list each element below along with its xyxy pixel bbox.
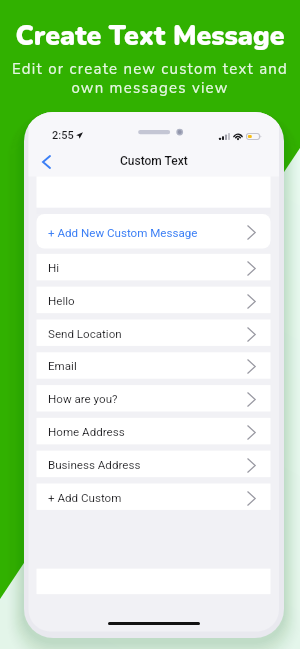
button[interactable]: + Add New Custom Message (37, 214, 271, 249)
button[interactable]: Back (37, 151, 55, 173)
staticText: Email (48, 359, 77, 373)
staticText: 2:55 (52, 129, 74, 142)
staticText: Home Address (48, 425, 125, 439)
staticText: Custom Text (120, 154, 188, 168)
button[interactable]: Hello (37, 287, 271, 313)
staticText: Send Location (48, 327, 122, 341)
staticText: How are you? (48, 392, 118, 406)
button[interactable]: Business Address (37, 451, 271, 477)
staticText: Edit or create new custom text and own m… (4, 59, 296, 98)
staticText: Create Text Message (0, 18, 300, 54)
button[interactable]: Home Address (37, 418, 271, 444)
staticText: + Add New Custom Message (48, 226, 198, 240)
button[interactable]: Send Location (37, 320, 271, 346)
staticText: Hello (48, 294, 75, 308)
button[interactable]: Hi (37, 254, 271, 280)
button[interactable]: + Add Custom (37, 484, 271, 510)
staticText: + Add Custom (48, 491, 122, 505)
staticText: Hi (48, 261, 60, 275)
button[interactable]: Email (37, 352, 271, 378)
staticText: Business Address (48, 458, 141, 472)
button[interactable]: How are you? (37, 385, 271, 411)
